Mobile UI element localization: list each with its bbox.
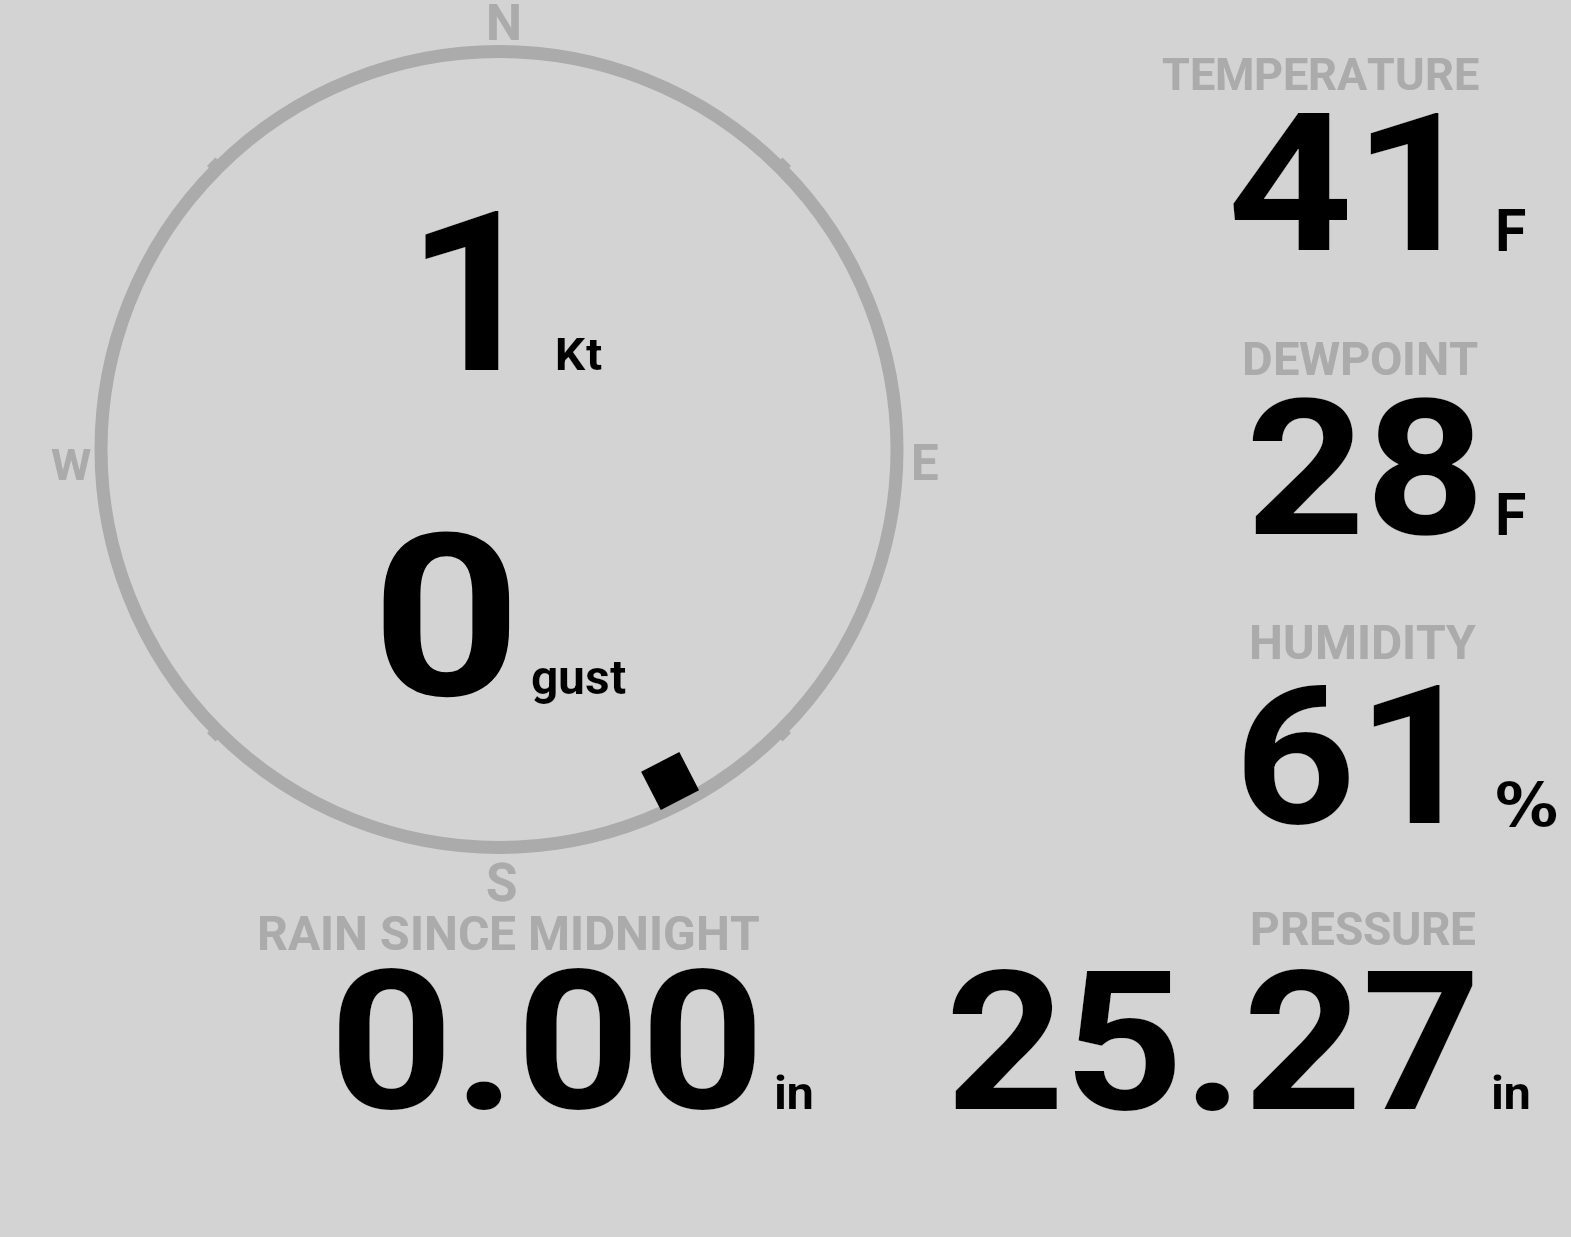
button[interactable]: Rain since midnight 0.00 inches <box>250 900 830 1125</box>
button[interactable]: Wind 1 knot, gusting 0, direction south-… <box>95 45 905 855</box>
button[interactable]: Dewpoint 28 degrees F <box>1140 330 1560 550</box>
button[interactable]: Humidity 61 percent <box>1140 615 1560 835</box>
button[interactable]: Pressure 25.27 inches <box>900 900 1520 1125</box>
button[interactable]: Temperature 41 degrees F <box>1140 40 1560 270</box>
